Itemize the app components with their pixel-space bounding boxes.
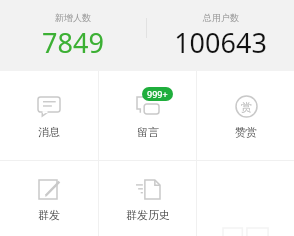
other: 消息: [37, 96, 61, 117]
staticText: 新增人数: [55, 12, 91, 23]
button[interactable]: 赞赏: [197, 71, 294, 160]
staticText: 群发: [38, 208, 60, 222]
button[interactable]: 总用户数: [147, 0, 294, 71]
staticText: 消息: [38, 125, 60, 139]
button[interactable]: 群发: [0, 161, 98, 236]
other: 赞赏: [235, 95, 258, 118]
button[interactable]: 消息: [0, 71, 98, 160]
other: 群发: [38, 178, 61, 201]
staticText: 赏: [241, 100, 252, 114]
button[interactable]: 新增人数: [0, 0, 146, 71]
other: 留言: [136, 96, 160, 117]
staticText: 100643: [174, 24, 267, 61]
staticText: 赞赏: [235, 125, 257, 139]
button[interactable]: 群发历史: [99, 161, 196, 236]
staticText: 7849: [42, 24, 104, 61]
button[interactable]: 留言: [99, 71, 196, 160]
staticText: 群发历史: [126, 208, 170, 222]
staticText: 总用户数: [203, 12, 239, 23]
staticText: 999+: [147, 88, 168, 100]
staticText: 留言: [137, 125, 159, 139]
other: 群发历史: [135, 178, 161, 201]
